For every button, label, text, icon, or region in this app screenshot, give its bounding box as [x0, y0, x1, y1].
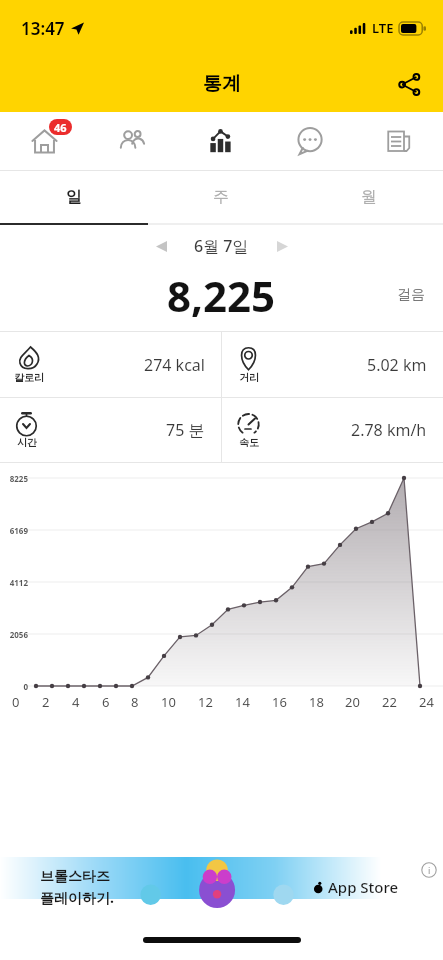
- staticText: 월: [361, 187, 377, 207]
- staticText: 18: [309, 693, 324, 711]
- staticText: 2056: [0, 629, 28, 640]
- staticText: 시간: [17, 436, 37, 449]
- button[interactable]: Home: [0, 112, 88, 170]
- button[interactable]: News: [354, 112, 443, 170]
- staticText: 6: [102, 693, 110, 711]
- button[interactable]: 속도: [222, 398, 443, 462]
- button[interactable]: 일: [0, 171, 147, 223]
- staticText: 24: [419, 693, 434, 711]
- staticText: 5.02 km: [367, 354, 427, 376]
- staticText: 14: [235, 693, 250, 711]
- button[interactable]: 시간: [0, 398, 221, 462]
- staticText: 22: [382, 693, 397, 711]
- staticText: 거리: [239, 371, 259, 384]
- staticText: 16: [272, 693, 287, 711]
- staticText: 4112: [0, 577, 28, 588]
- staticText: 속도: [239, 436, 259, 449]
- staticText: 칼로리: [14, 371, 44, 384]
- button[interactable]: Chat: [265, 112, 354, 170]
- staticText: 20: [345, 693, 360, 711]
- button[interactable]: 브롤스타즈: [0, 857, 443, 917]
- staticText: App Store: [328, 877, 399, 897]
- staticText: 6169: [0, 525, 28, 536]
- button[interactable]: Next day: [265, 229, 299, 263]
- staticText: 46: [54, 120, 67, 135]
- staticText: 8225: [0, 473, 28, 484]
- staticText: 10: [161, 693, 176, 711]
- button[interactable]: Friends: [88, 112, 176, 170]
- staticText: i: [428, 864, 431, 876]
- staticText: 274 kcal: [144, 354, 205, 376]
- staticText: 브롤스타즈: [40, 868, 110, 886]
- button[interactable]: Share: [383, 58, 435, 110]
- staticText: LTE: [372, 19, 394, 37]
- staticText: 8,225: [167, 267, 276, 323]
- staticText: 플레이하기.: [40, 888, 114, 907]
- staticText: 12: [198, 693, 213, 711]
- button[interactable]: Ad info: [421, 862, 437, 878]
- button[interactable]: 주: [147, 171, 295, 223]
- button[interactable]: Statistics: [176, 112, 265, 170]
- staticText: 6월 7일: [194, 235, 249, 257]
- staticText: 0: [0, 681, 28, 692]
- staticText: 2.78 km/h: [351, 419, 427, 441]
- staticText: 4: [72, 693, 80, 711]
- staticText: 8: [131, 693, 139, 711]
- staticText: 통계: [203, 72, 241, 96]
- staticText: 걸음: [397, 286, 425, 304]
- staticText: 주: [213, 187, 229, 207]
- button[interactable]: 월: [295, 171, 443, 223]
- staticText: 일: [66, 187, 82, 207]
- staticText: 13:47: [21, 17, 65, 40]
- staticText: 75 분: [166, 419, 205, 441]
- staticText: 2: [42, 693, 50, 711]
- staticText: 0: [12, 693, 20, 711]
- button[interactable]: 칼로리: [0, 332, 221, 397]
- button[interactable]: 거리: [222, 332, 443, 397]
- button[interactable]: Previous day: [144, 229, 178, 263]
